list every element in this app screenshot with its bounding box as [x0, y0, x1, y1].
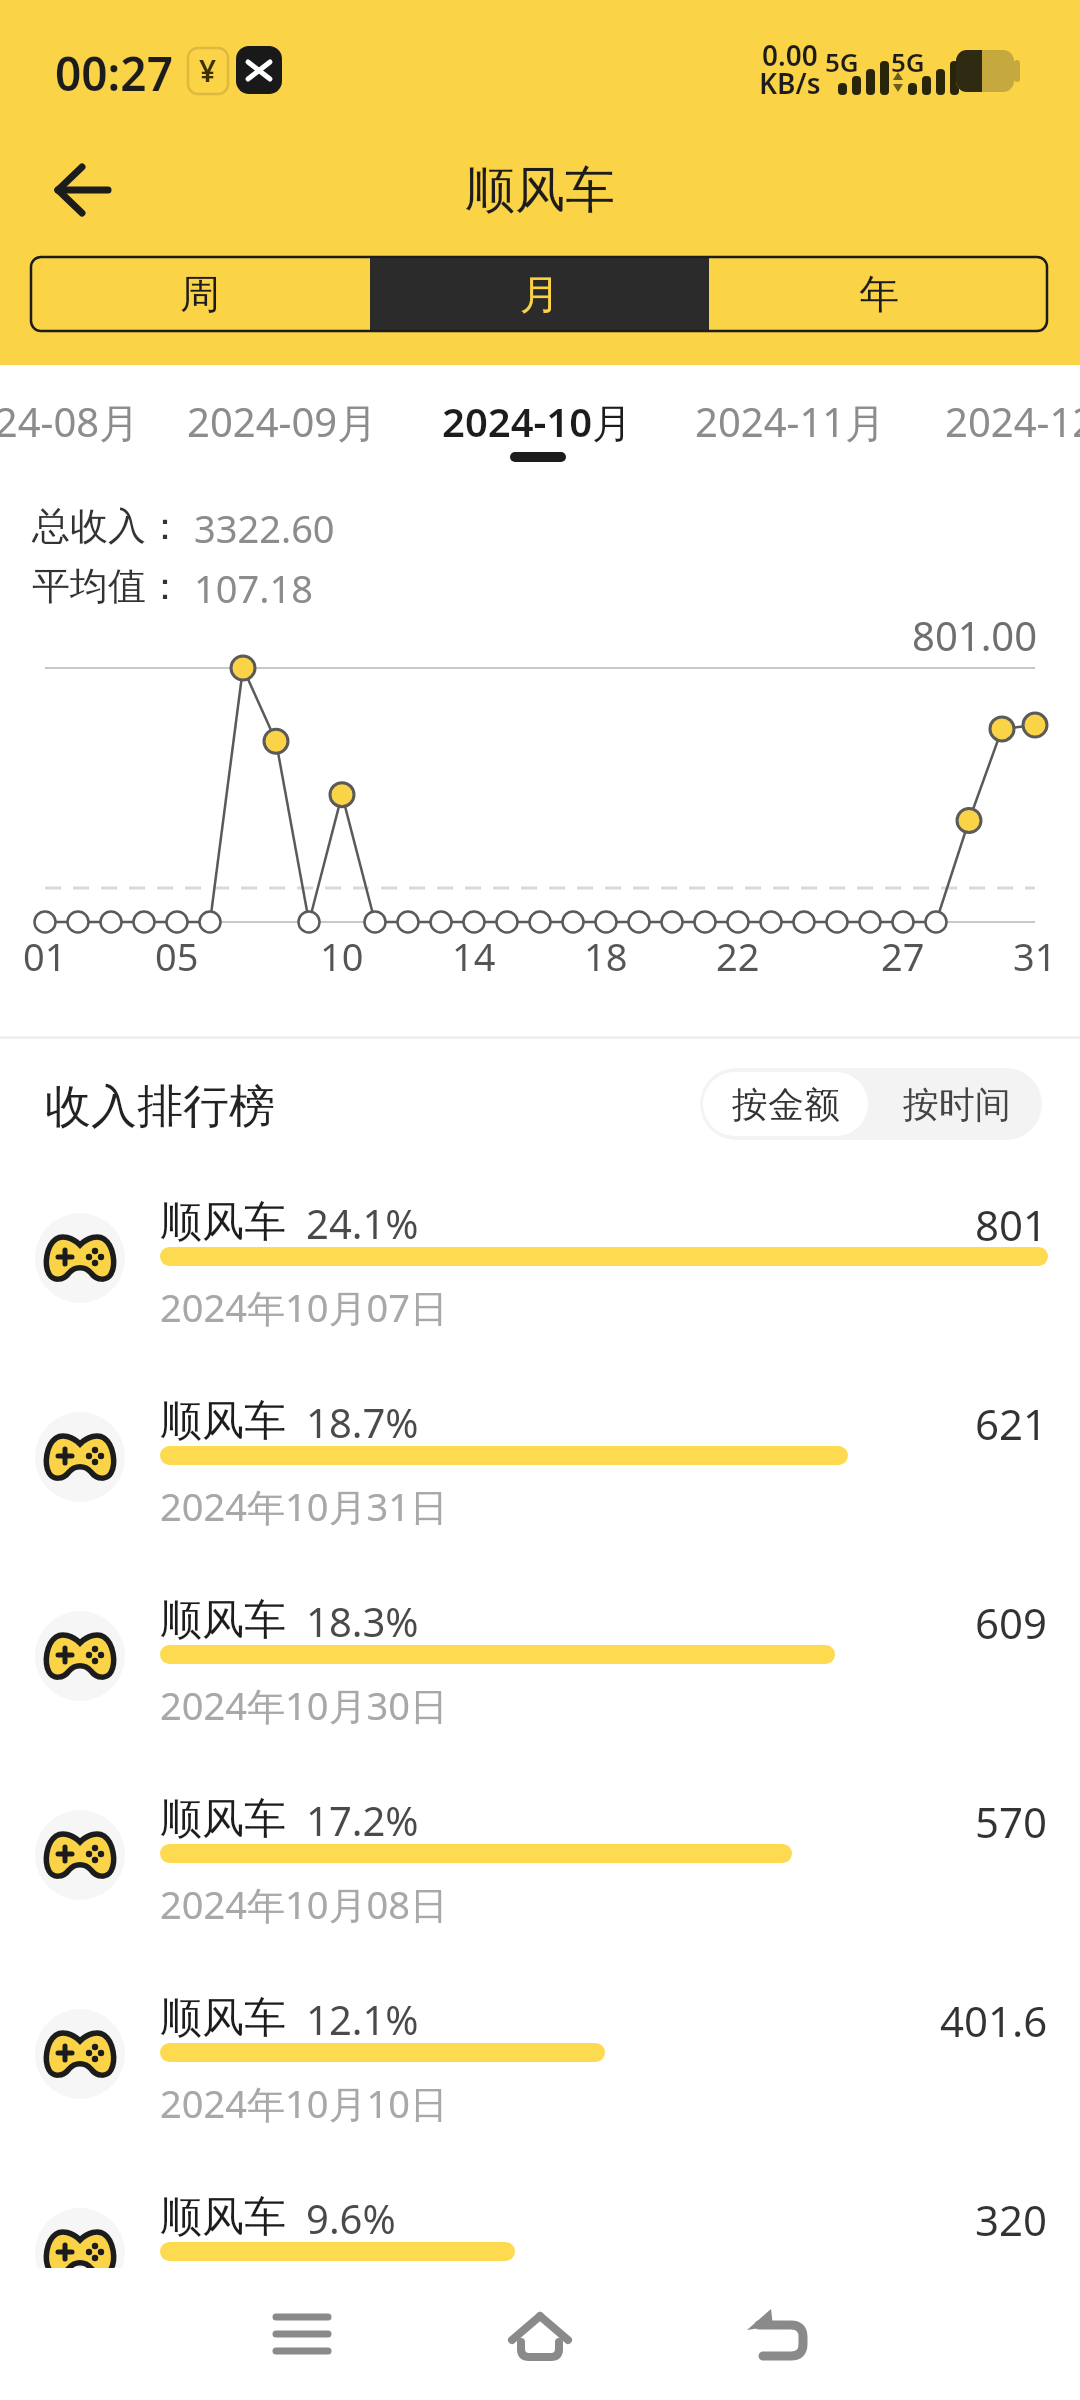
- button[interactable]: [242, 2295, 362, 2385]
- staticText: 2024-09月: [187, 394, 378, 446]
- staticText: 2024年10月10日: [160, 2077, 448, 2129]
- staticText: 801: [975, 1196, 1048, 1248]
- button[interactable]: 2024-08月: [0, 394, 159, 446]
- staticText: 周: [180, 269, 220, 319]
- staticText: 00:27: [55, 42, 173, 94]
- staticText: 顺风车: [160, 1793, 286, 1845]
- staticText: 14: [452, 930, 496, 980]
- staticText: 按时间: [903, 1082, 1011, 1127]
- staticText: 18: [584, 930, 628, 980]
- staticText: 2024年10月31日: [160, 1480, 448, 1532]
- button[interactable]: 顺风车: [160, 2191, 720, 2243]
- staticText: 2024年10月06日: [160, 2276, 448, 2328]
- staticText: 2024年10月30日: [160, 1679, 448, 1731]
- staticText: KB/s: [759, 64, 821, 96]
- staticText: 总收入：: [32, 502, 184, 550]
- staticText: 621: [975, 1395, 1048, 1447]
- staticText: 801.00: [912, 608, 1038, 660]
- staticText: 12.1%: [306, 1992, 419, 2044]
- staticText: 顺风车: [160, 1594, 286, 1646]
- button[interactable]: 顺风车: [160, 1395, 720, 1447]
- staticText: 2024-08月: [0, 394, 140, 446]
- staticText: 年: [859, 269, 899, 319]
- staticText: 2024年10月08日: [160, 1878, 448, 1930]
- button[interactable]: 2024-09月: [167, 394, 397, 446]
- staticText: 01: [23, 930, 67, 980]
- staticText: 5G: [825, 44, 859, 74]
- staticText: 顺风车: [160, 1395, 286, 1447]
- staticText: 22: [716, 930, 760, 980]
- button[interactable]: 顺风车: [160, 1196, 720, 1248]
- staticText: ¥: [199, 50, 217, 91]
- staticText: 107.18: [194, 562, 313, 614]
- staticText: 平均值：: [32, 562, 184, 610]
- staticText: 按金额: [732, 1082, 840, 1127]
- button[interactable]: 2024-12月: [925, 394, 1080, 446]
- staticText: 9.6%: [306, 2191, 396, 2243]
- staticText: 顺风车: [160, 2191, 286, 2243]
- button[interactable]: 顺风车: [160, 1793, 720, 1845]
- button[interactable]: 月: [370, 256, 709, 332]
- staticText: 2024-11月: [695, 394, 886, 446]
- staticText: 顺风车: [160, 1992, 286, 2044]
- staticText: 18.7%: [306, 1395, 419, 1447]
- staticText: 收入排行榜: [45, 1078, 275, 1134]
- button[interactable]: 2024-11月: [675, 394, 905, 446]
- staticText: 05: [155, 930, 199, 980]
- staticText: 顺风车: [465, 159, 615, 222]
- staticText: 609: [975, 1594, 1048, 1646]
- staticText: 18.3%: [306, 1594, 419, 1646]
- staticText: 0.00: [762, 36, 818, 68]
- staticText: 月: [520, 269, 560, 319]
- staticText: 401.6: [940, 1992, 1048, 2044]
- staticText: 17.2%: [306, 1793, 419, 1845]
- staticText: 3322.60: [194, 502, 335, 554]
- staticText: 24.1%: [306, 1196, 419, 1248]
- staticText: 320: [975, 2191, 1048, 2243]
- staticText: 27: [881, 930, 925, 980]
- button[interactable]: 年: [709, 256, 1048, 332]
- staticText: 570: [975, 1793, 1048, 1845]
- button[interactable]: 顺风车: [160, 1594, 720, 1646]
- button[interactable]: 按金额: [700, 1068, 871, 1140]
- button[interactable]: 按时间: [871, 1068, 1042, 1140]
- button[interactable]: [40, 150, 130, 230]
- staticText: 顺风车: [160, 1196, 286, 1248]
- button[interactable]: 2024-10月: [422, 394, 652, 446]
- button[interactable]: 顺风车: [160, 1992, 720, 2044]
- staticText: 10: [320, 930, 364, 980]
- button[interactable]: 周: [30, 256, 370, 332]
- button[interactable]: [725, 2295, 845, 2385]
- staticText: 31: [1013, 930, 1057, 980]
- staticText: 5G: [891, 44, 925, 74]
- staticText: 2024-10月: [442, 394, 633, 446]
- staticText: 2024年10月07日: [160, 1281, 448, 1333]
- button[interactable]: [480, 2295, 600, 2385]
- staticText: 2024-12月: [945, 394, 1080, 446]
